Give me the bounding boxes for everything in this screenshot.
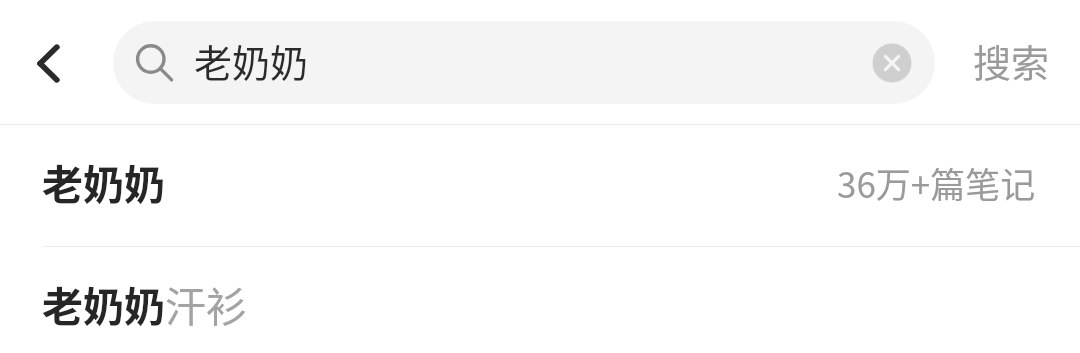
staticText: 老奶奶汗衫 [42,274,247,333]
staticText: 老奶奶 [194,33,309,88]
button[interactable]: 搜索 [935,0,1080,125]
button[interactable]: Back [0,0,113,125]
button[interactable]: 老奶奶 [0,125,1080,247]
staticText: 老奶奶 [42,152,165,211]
staticText: 36万+篇笔记 [837,157,1036,208]
button[interactable]: Clear search [856,27,928,99]
staticText: 搜索 [973,33,1050,88]
button[interactable]: 老奶奶 [113,21,935,104]
button[interactable]: 老奶奶汗衫 [0,247,1080,353]
